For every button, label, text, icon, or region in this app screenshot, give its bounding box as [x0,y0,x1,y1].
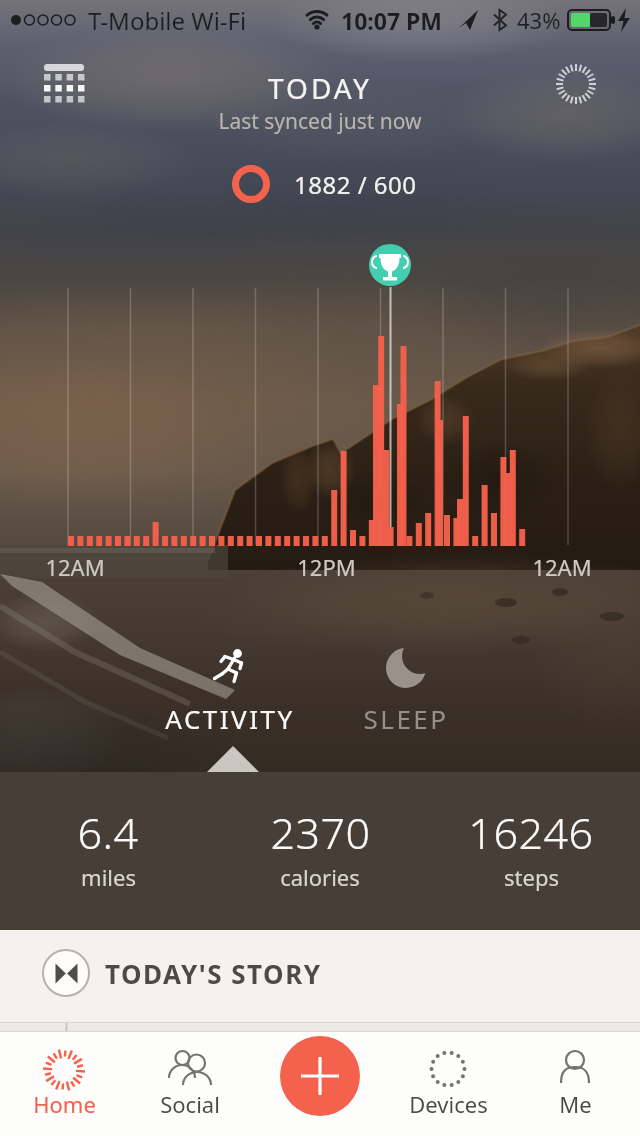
staticText: Social [160,1089,220,1119]
button[interactable]: Me [525,1036,625,1136]
button[interactable] [280,1036,360,1116]
staticText: Home [33,1089,96,1119]
button[interactable] [30,940,360,1006]
staticText: calories [280,862,360,892]
button[interactable] [330,638,480,742]
staticText: miles [81,862,136,892]
staticText: 10:07 PM [341,5,443,36]
button[interactable] [150,638,310,742]
button[interactable]: Social [140,1036,240,1136]
staticText: TODAY'S STORY [105,956,322,991]
button[interactable] [548,56,604,112]
staticText: 12AM [45,552,105,582]
staticText: 2370 [270,803,371,862]
staticText: Me [559,1089,592,1119]
button[interactable]: Home [14,1036,114,1136]
staticText: 12AM [532,552,592,582]
staticText: steps [504,862,559,892]
staticText: SLEEP [363,701,449,736]
button[interactable]: Devices [398,1036,498,1136]
button[interactable] [30,56,90,116]
staticText: ACTIVITY [165,701,295,736]
staticText: 1882 / 600 [294,168,417,201]
staticText: 43% [517,5,561,35]
staticText: 12PM [297,552,356,582]
staticText: T-Mobile Wi-Fi [88,4,247,37]
staticText: TODAY [268,69,372,107]
staticText: 6.4 [77,803,139,862]
staticText: Devices [409,1089,488,1119]
staticText: Last synced just now [218,107,422,136]
staticText: 16246 [468,803,594,862]
